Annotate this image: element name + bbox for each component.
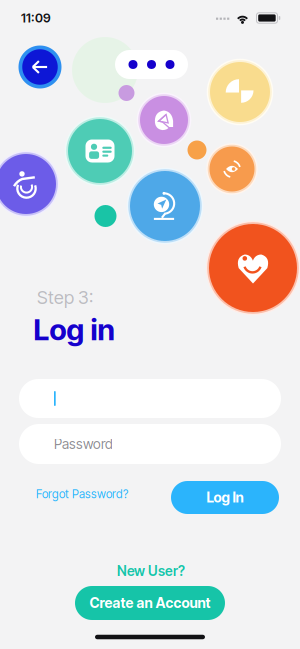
- staticText: Log in: [33, 312, 114, 347]
- staticText: New User?: [117, 563, 185, 579]
- button[interactable]: Log In: [171, 481, 279, 514]
- staticText: Step 3:: [37, 287, 93, 308]
- staticText: Password: [54, 436, 113, 452]
- staticText: 11:09: [21, 10, 51, 26]
- staticText: Log In: [206, 489, 243, 506]
- button[interactable]: Forgot Password?: [35, 482, 129, 506]
- button[interactable]: Create an Account: [75, 586, 225, 620]
- button[interactable]: Back: [18, 45, 61, 88]
- staticText: Create an Account: [89, 594, 210, 611]
- staticText: Forgot Password?: [36, 487, 128, 501]
